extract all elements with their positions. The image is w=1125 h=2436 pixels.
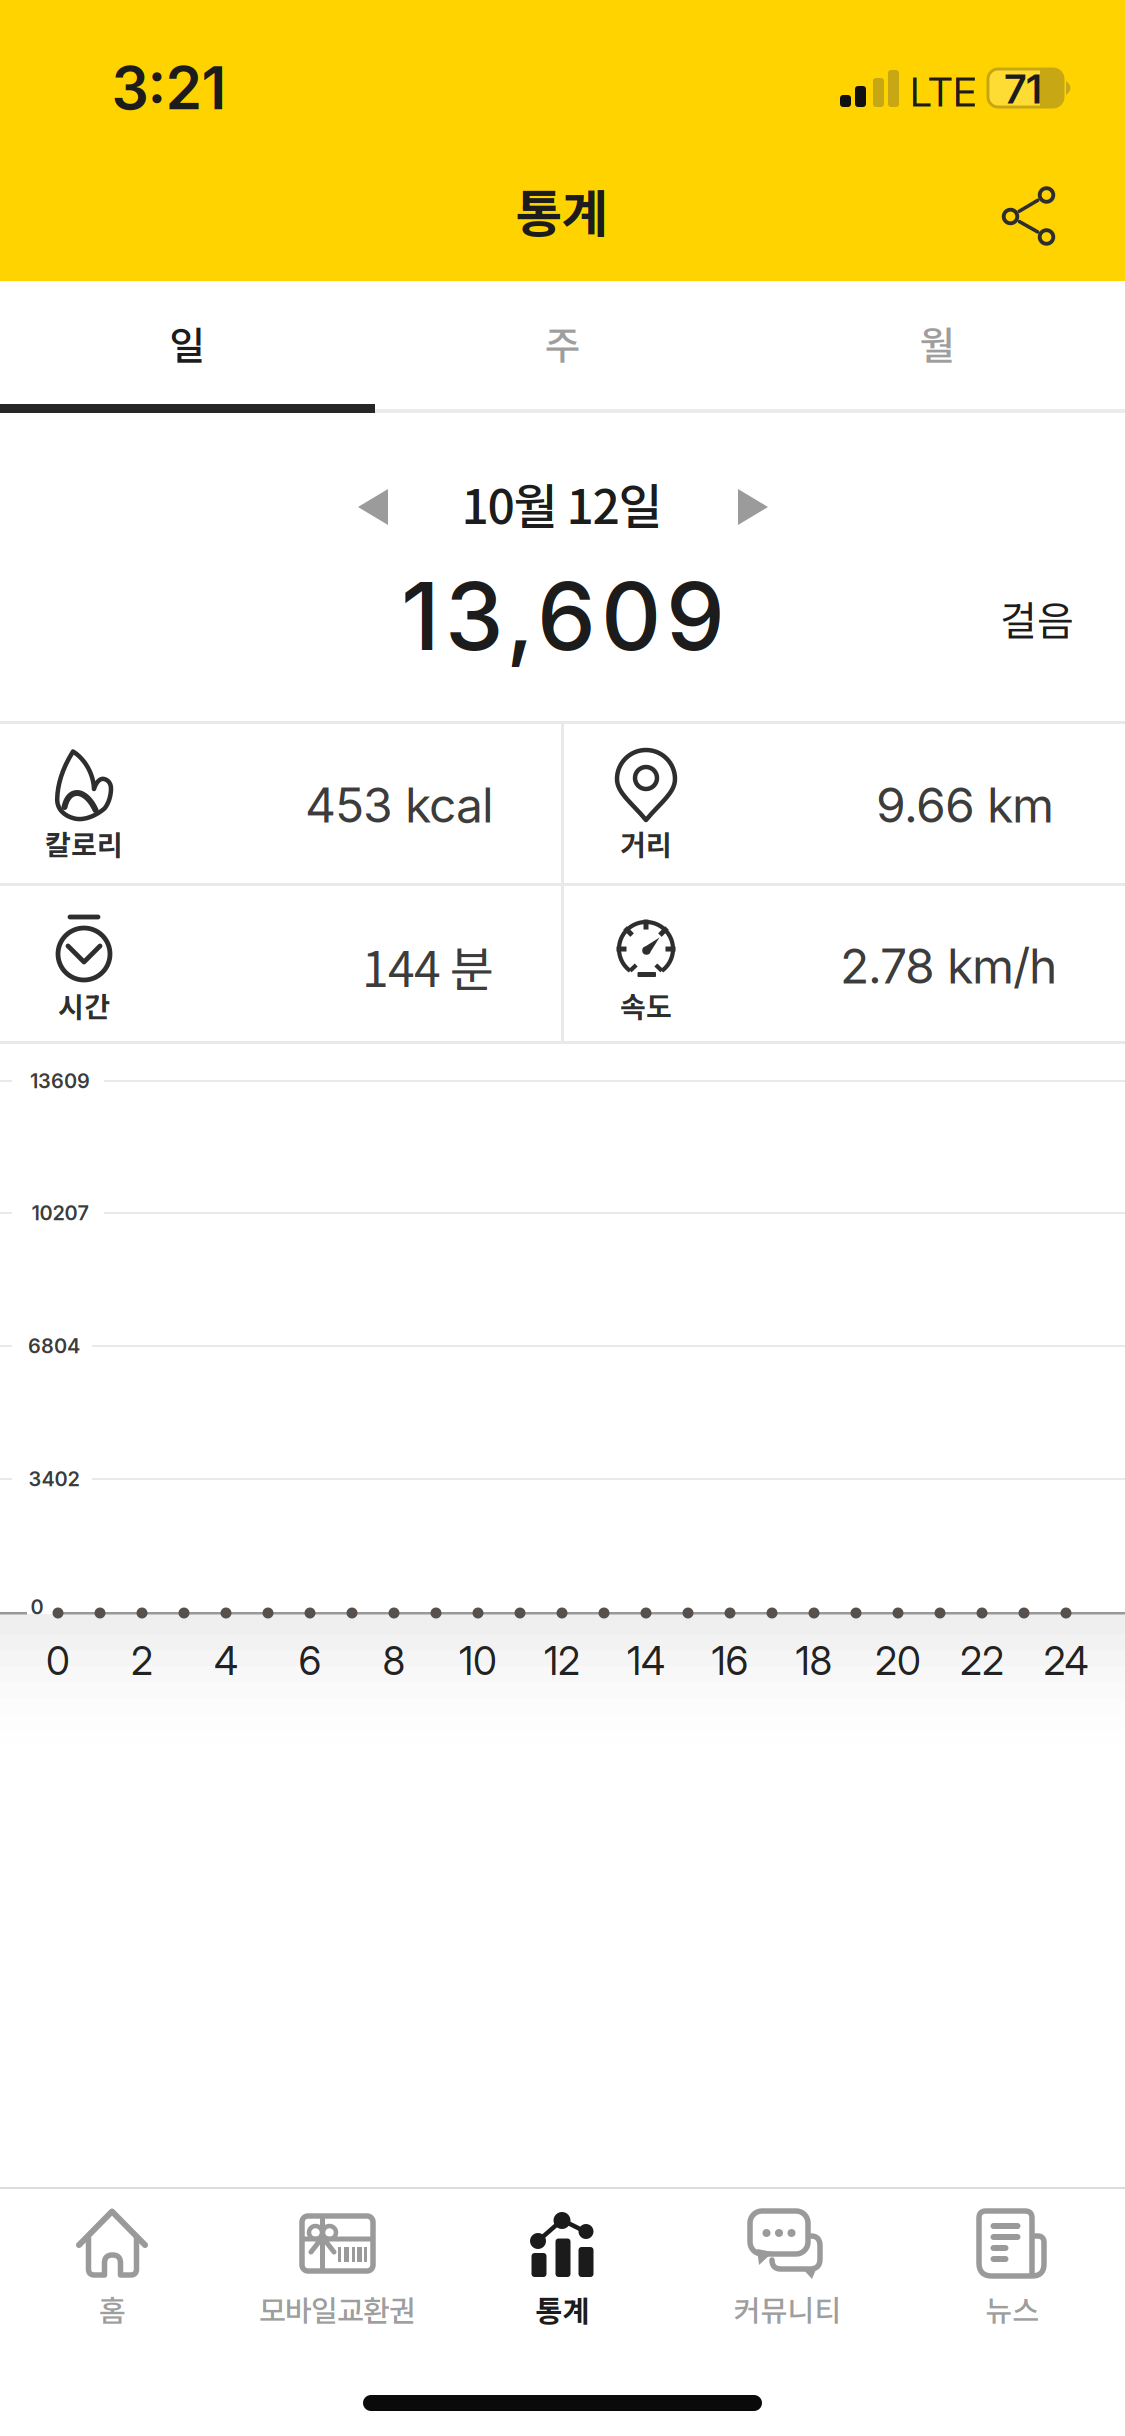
button[interactable]: 통계 bbox=[450, 2190, 675, 2340]
staticText: 커뮤니티 bbox=[733, 2288, 841, 2330]
staticText: 걸음 bbox=[1000, 589, 1074, 647]
staticText: 71 bbox=[1004, 65, 1041, 113]
staticText: 13,609 bbox=[401, 559, 725, 672]
staticText: 13609 bbox=[30, 1069, 90, 1093]
staticText: 24 bbox=[1043, 1638, 1088, 1684]
staticText: LTE bbox=[910, 68, 976, 116]
staticText: 6 bbox=[298, 1638, 321, 1684]
staticText: 4 bbox=[214, 1638, 238, 1684]
button[interactable]: Share bbox=[1000, 187, 1057, 244]
staticText: 0 bbox=[30, 1595, 43, 1619]
button[interactable]: 홈 bbox=[0, 2190, 225, 2340]
staticText: 2.78 km/h bbox=[840, 937, 1057, 995]
staticText: 453 kcal bbox=[305, 776, 494, 834]
button[interactable]: 일 bbox=[0, 283, 375, 403]
staticText: 속도 bbox=[620, 985, 672, 1025]
button[interactable]: 모바일교환권 bbox=[225, 2190, 450, 2340]
staticText: 3402 bbox=[28, 1467, 79, 1491]
button[interactable]: 월 bbox=[750, 283, 1125, 403]
staticText: 통계 bbox=[515, 173, 608, 247]
staticText: 통계 bbox=[535, 2288, 589, 2330]
staticText: 월 bbox=[919, 315, 955, 371]
staticText: 홈 bbox=[99, 2288, 126, 2330]
staticText: 모바일교환권 bbox=[259, 2288, 416, 2330]
staticText: 22 bbox=[960, 1638, 1004, 1684]
staticText: 8 bbox=[382, 1638, 405, 1684]
button[interactable]: 커뮤니티 bbox=[675, 2190, 900, 2340]
staticText: 칼로리 bbox=[45, 823, 123, 863]
staticText: 0 bbox=[46, 1638, 70, 1684]
staticText: 16 bbox=[711, 1638, 748, 1684]
staticText: 10월 12일 bbox=[461, 468, 662, 538]
staticText: 6804 bbox=[28, 1334, 80, 1358]
button[interactable]: Next day bbox=[723, 477, 783, 537]
staticText: 10 bbox=[459, 1638, 497, 1684]
staticText: 14 bbox=[627, 1638, 665, 1684]
staticText: 10207 bbox=[31, 1201, 88, 1225]
staticText: 시간 bbox=[58, 985, 110, 1025]
staticText: 2 bbox=[131, 1638, 153, 1684]
staticText: 12 bbox=[544, 1638, 580, 1684]
button[interactable]: 주 bbox=[375, 283, 750, 403]
button[interactable]: 뉴스 bbox=[900, 2190, 1125, 2340]
staticText: 3:21 bbox=[111, 52, 226, 123]
staticText: 뉴스 bbox=[985, 2288, 1039, 2330]
staticText: 거리 bbox=[620, 823, 672, 863]
staticText: 144 분 bbox=[362, 931, 494, 1001]
staticText: 9.66 km bbox=[876, 776, 1054, 834]
button[interactable]: Previous day bbox=[343, 477, 403, 537]
staticText: 일 bbox=[169, 315, 205, 371]
staticText: 18 bbox=[795, 1638, 832, 1684]
staticText: 주 bbox=[544, 315, 580, 371]
staticText: 20 bbox=[875, 1638, 921, 1684]
